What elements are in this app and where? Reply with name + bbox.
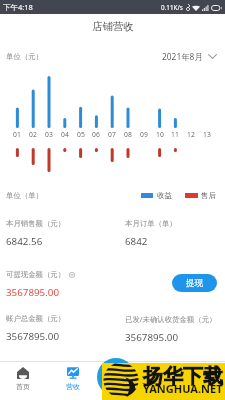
- staticText: 2021年8月: [162, 51, 203, 62]
- button[interactable]: 金额说明: [69, 272, 75, 278]
- staticText: 可提现金额（元）: [6, 270, 66, 279]
- button[interactable]: 2021年8月: [161, 49, 218, 64]
- staticText: 提现: [186, 278, 203, 289]
- staticText: 店铺营收: [92, 20, 134, 33]
- staticText: 03: [43, 130, 55, 139]
- button[interactable]: 首页: [10, 367, 36, 391]
- staticText: 单位（单）: [6, 191, 43, 200]
- staticText: 06: [90, 130, 102, 139]
- staticText: 01: [11, 130, 23, 139]
- staticText: 本月销售额（元）: [6, 219, 66, 228]
- staticText: 6842.56: [6, 235, 43, 248]
- staticText: 营收: [66, 382, 80, 391]
- staticText: 扬华下载: [143, 364, 223, 389]
- staticText: 12: [185, 130, 197, 139]
- staticText: 6842: [125, 235, 148, 248]
- staticText: YANGHUA.NET: [143, 381, 223, 396]
- staticText: 04: [59, 130, 71, 139]
- staticText: 10: [154, 130, 166, 139]
- staticText: 3567895.00: [6, 330, 60, 343]
- button[interactable]: 提现: [172, 274, 217, 292]
- staticText: 3567895.00: [125, 331, 179, 344]
- staticText: 单位（元）: [6, 52, 43, 61]
- staticText: 07: [106, 130, 118, 139]
- staticText: 11: [169, 130, 181, 139]
- staticText: 02: [27, 130, 39, 139]
- staticText: 0.11K/s: [161, 3, 183, 12]
- staticText: 本月订单（单）: [125, 219, 177, 228]
- button[interactable]: 营收: [60, 367, 86, 391]
- staticText: 3567895.00: [6, 286, 60, 299]
- staticText: 首页: [16, 382, 30, 391]
- staticText: 已发/未确认收货金额（元）: [125, 314, 217, 324]
- staticText: 05: [75, 130, 87, 139]
- staticText: 下午4:18: [3, 2, 33, 12]
- staticText: 08: [122, 130, 134, 139]
- staticText: 09: [138, 130, 150, 139]
- staticText: 售后: [201, 191, 216, 200]
- staticText: 账户总金额（元）: [6, 314, 66, 323]
- staticText: 13: [201, 130, 213, 139]
- staticText: 收益: [157, 191, 172, 200]
